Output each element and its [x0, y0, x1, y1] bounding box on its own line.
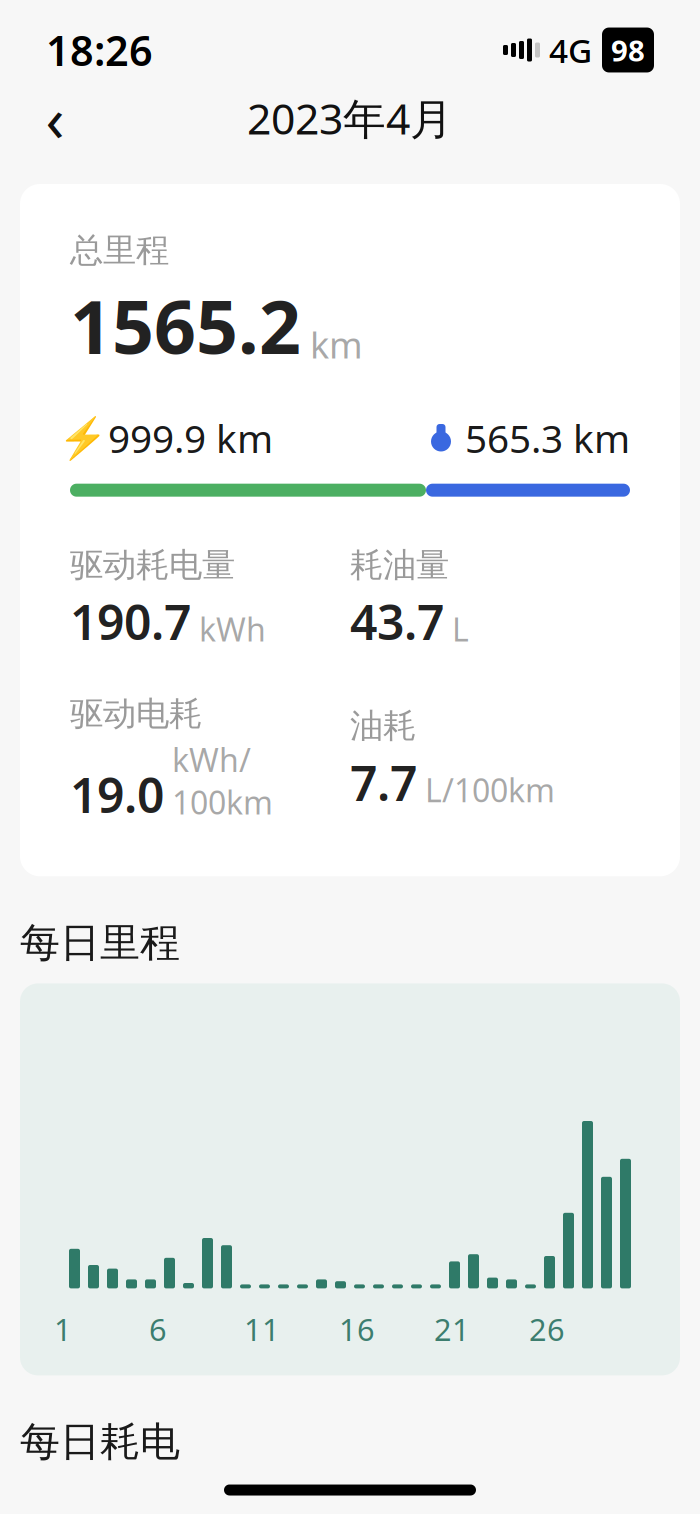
- staticText: 总里程: [70, 230, 169, 271]
- staticText: 1: [54, 1309, 72, 1349]
- staticText: 98: [611, 30, 645, 69]
- staticText: L: [452, 608, 469, 650]
- staticText: 油耗: [350, 705, 416, 746]
- staticText: 18:26: [46, 23, 153, 77]
- staticText: 耗油量: [350, 545, 449, 586]
- staticText: 7.7: [350, 750, 417, 814]
- staticText: 1565.2: [70, 277, 301, 374]
- staticText: 565.3 km: [465, 412, 630, 464]
- staticText: 26: [529, 1309, 565, 1349]
- staticText: 999.9 km: [108, 412, 273, 464]
- staticText: L/100km: [425, 769, 555, 811]
- staticText: 16: [339, 1309, 375, 1349]
- staticText: 11: [244, 1309, 280, 1349]
- button[interactable]: Back: [20, 83, 90, 153]
- staticText: ‹: [45, 77, 64, 159]
- staticText: 21: [434, 1309, 470, 1349]
- staticText: ⚡: [58, 415, 108, 461]
- staticText: 驱动耗电量: [70, 545, 235, 586]
- staticText: 每日里程: [20, 918, 180, 967]
- staticText: 190.7: [70, 590, 191, 653]
- staticText: 每日耗电: [20, 1417, 180, 1466]
- staticText: 6: [149, 1309, 167, 1349]
- staticText: kWh: [199, 608, 266, 650]
- staticText: km: [310, 320, 363, 368]
- staticText: 19.0: [70, 762, 164, 826]
- staticText: kWh/100km: [172, 738, 273, 823]
- staticText: 43.7: [350, 590, 444, 653]
- staticText: 2023年4月: [247, 90, 453, 146]
- staticText: 4G: [549, 28, 592, 72]
- staticText: 驱动电耗: [70, 693, 202, 734]
